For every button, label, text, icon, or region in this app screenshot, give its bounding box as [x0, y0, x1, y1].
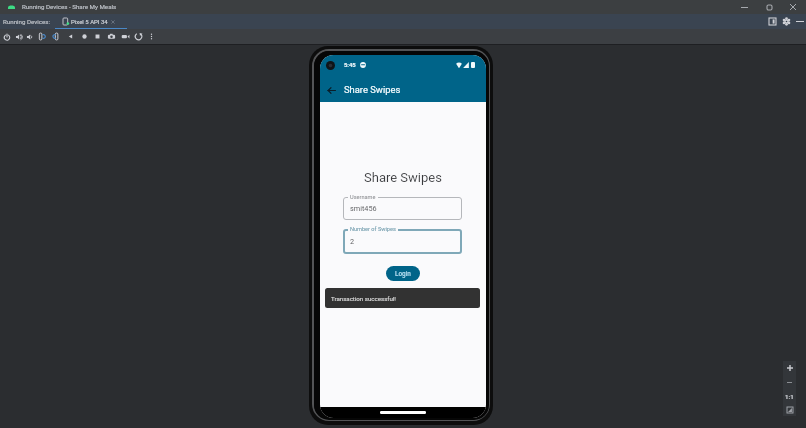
button[interactable]: More [145, 29, 157, 44]
button[interactable]: Split layout [765, 14, 779, 29]
button[interactable]: Volume down [24, 29, 36, 44]
staticText: Running Devices - Share My Meals [22, 3, 117, 10]
button[interactable]: Volume up [13, 29, 25, 44]
button[interactable]: Restart [132, 29, 144, 44]
button[interactable]: Home [78, 29, 90, 44]
staticText: Login [395, 270, 411, 278]
button[interactable]: Rotate left [35, 29, 47, 44]
staticText: Running Devices: [3, 18, 51, 25]
staticText: Pixel 5 API 34 [71, 18, 108, 25]
button[interactable]: Screenshot [105, 29, 117, 44]
button[interactable]: Zoom out [783, 375, 796, 389]
button[interactable]: Login [386, 266, 420, 281]
button[interactable]: Zoom in [783, 361, 796, 375]
button[interactable]: Zoom to fit [783, 403, 796, 416]
button[interactable]: Record [119, 29, 131, 44]
staticText: Share Swipes [364, 170, 442, 185]
button[interactable]: Rotate right [51, 29, 63, 44]
button[interactable]: Close [781, 0, 805, 14]
button[interactable]: Number of Swipes [343, 229, 462, 254]
staticText: Username [350, 194, 376, 201]
button[interactable]: Power [1, 29, 13, 44]
button[interactable]: Pixel 5 API 34 [55, 14, 127, 29]
button[interactable]: Maximize [757, 0, 781, 14]
staticText: Transaction successful! [331, 295, 396, 302]
staticText: smit456 [350, 204, 377, 213]
button[interactable]: Actual size [783, 389, 796, 403]
staticText: 5:45 [344, 62, 356, 69]
button[interactable]: Settings [779, 14, 793, 29]
button[interactable]: Overview [91, 29, 103, 44]
button[interactable]: Transaction successful! [325, 288, 480, 308]
button[interactable]: Back [323, 81, 339, 99]
staticText: Share Swipes [344, 84, 401, 95]
button[interactable]: Minimize [732, 0, 756, 14]
button[interactable]: Hide tool window [793, 14, 806, 29]
staticText: 2 [350, 237, 355, 246]
button[interactable]: Back [64, 29, 76, 44]
staticText: Number of Swipes [350, 226, 396, 233]
staticText: 1:1 [785, 393, 794, 400]
button[interactable]: Username [343, 197, 462, 220]
